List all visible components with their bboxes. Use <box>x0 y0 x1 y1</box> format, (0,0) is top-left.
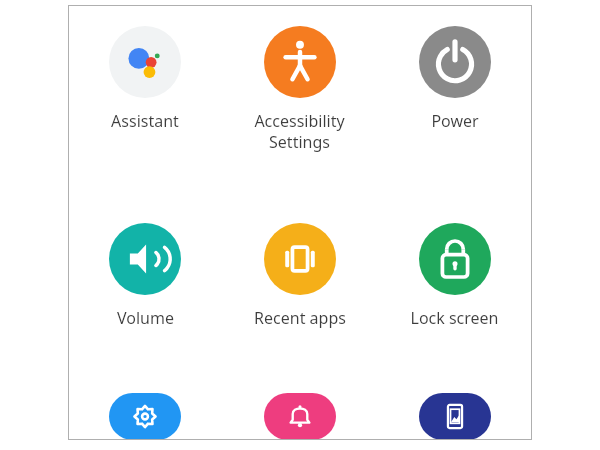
other: Recent apps <box>264 223 336 295</box>
other: Volume <box>109 223 181 295</box>
staticText: Power <box>431 110 479 132</box>
button[interactable]: Assistant <box>68 26 222 178</box>
button[interactable]: Notifications <box>222 393 377 440</box>
staticText: Recent apps <box>254 307 346 329</box>
button[interactable]: Screenshot <box>377 393 532 440</box>
other: Notifications <box>264 393 336 440</box>
button[interactable]: Quick Settings <box>68 393 222 440</box>
other: Quick Settings <box>109 393 181 440</box>
other: Screenshot <box>419 393 491 440</box>
staticText: Accessibility Settings <box>254 110 345 153</box>
other: Accessibility Settings <box>264 26 336 98</box>
button[interactable]: Power <box>377 26 532 178</box>
other: Assistant <box>109 26 181 98</box>
staticText: Volume <box>117 307 174 329</box>
button[interactable]: Recent apps <box>222 223 377 357</box>
other: Lock screen <box>419 223 491 295</box>
button[interactable]: Volume <box>68 223 222 357</box>
button[interactable]: Accessibility Settings <box>222 26 377 199</box>
button[interactable]: Lock screen <box>377 223 532 357</box>
staticText: Lock screen <box>410 307 499 329</box>
staticText: Assistant <box>111 110 179 132</box>
other: Power <box>419 26 491 98</box>
